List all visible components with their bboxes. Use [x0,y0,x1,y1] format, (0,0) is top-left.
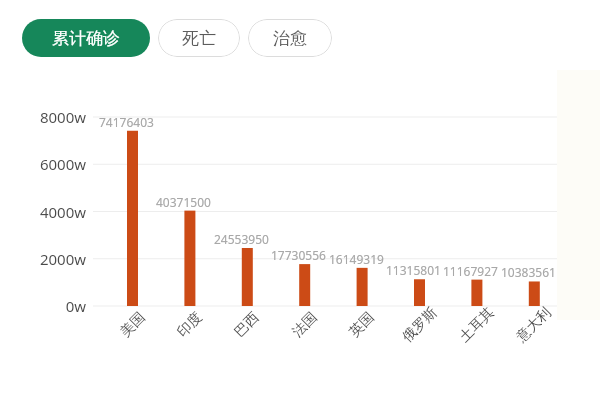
staticText: 11167927 [443,263,498,279]
staticText: 2000w [39,249,86,269]
staticText: 8000w [39,107,86,127]
staticText: 土耳其 [456,304,498,346]
staticText: 24553950 [214,231,269,247]
staticText: 10383561 [501,264,556,280]
button[interactable]: 累计确诊 [22,19,150,57]
staticText: 英国 [346,309,378,341]
staticText: 俄罗斯 [399,304,441,346]
staticText: 4000w [39,202,86,222]
staticText: 印度 [174,309,206,341]
button[interactable]: 死亡 [158,19,240,57]
staticText: 死亡 [182,28,216,49]
staticText: 治愈 [273,28,307,49]
staticText: 40371500 [156,194,211,210]
staticText: 意大利 [513,304,555,346]
staticText: 17730556 [271,247,326,263]
button[interactable]: 治愈 [248,19,332,57]
staticText: 6000w [39,154,86,174]
staticText: 0w [65,296,86,316]
staticText: 美国 [117,309,149,341]
staticText: 11315801 [386,262,441,278]
staticText: 法国 [289,309,321,341]
staticText: 16149319 [329,251,384,267]
staticText: 累计确诊 [52,28,120,49]
staticText: 74176403 [99,114,154,130]
staticText: 巴西 [231,309,263,341]
